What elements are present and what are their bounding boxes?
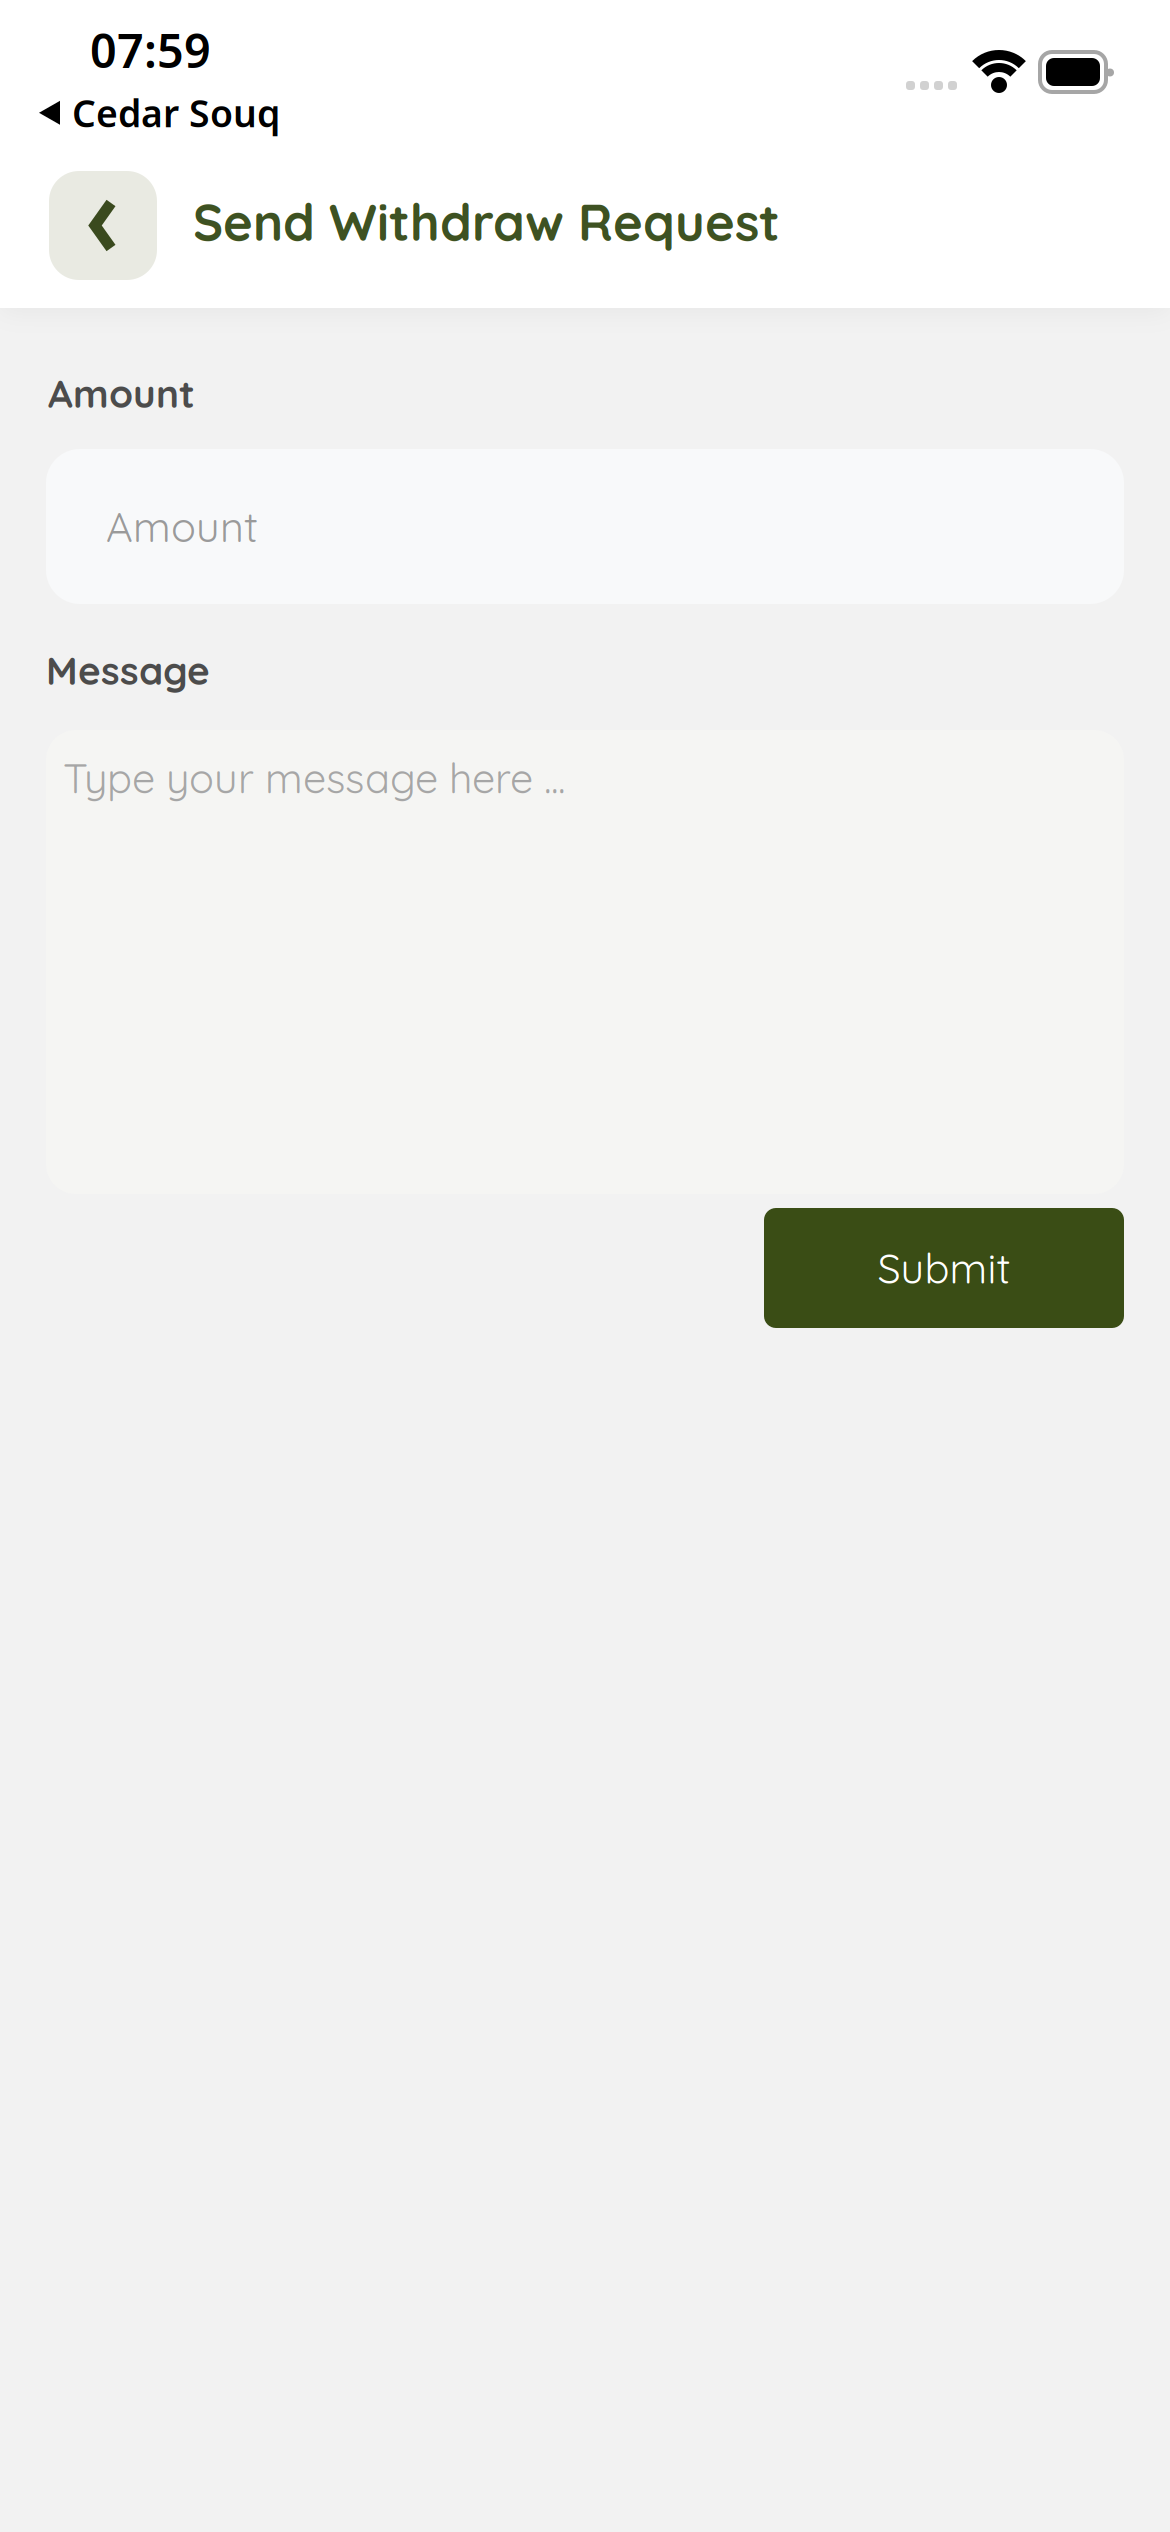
staticText: Submit xyxy=(877,1242,1010,1294)
button[interactable]: Amount xyxy=(46,449,1124,604)
staticText: 07:59 xyxy=(90,19,211,81)
staticText: Cedar Souq xyxy=(72,88,280,138)
button[interactable]: Submit xyxy=(764,1208,1124,1328)
button[interactable]: Message xyxy=(46,730,1124,1194)
staticText: Send Withdraw Request xyxy=(193,190,780,253)
staticText: Type your message here ... xyxy=(63,752,565,804)
staticText: Message xyxy=(46,646,210,694)
staticText: Amount xyxy=(48,369,195,417)
button[interactable]: Back xyxy=(49,171,157,280)
staticText: Amount xyxy=(106,501,258,552)
